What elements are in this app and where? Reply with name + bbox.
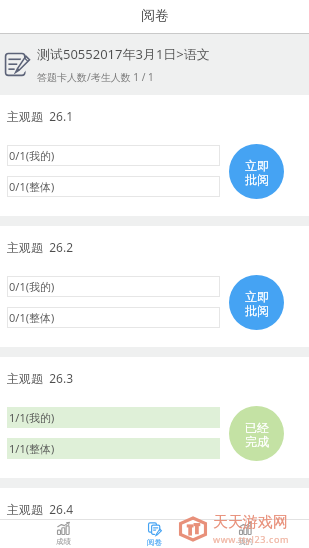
staticText: 已经 完成 — [245, 420, 269, 450]
button[interactable]: 立即 批阅 — [229, 144, 284, 199]
staticText: 我的 — [238, 537, 253, 546]
button[interactable]: 立即 批阅 — [229, 537, 284, 548]
staticText: www.ttyl23.com — [213, 533, 289, 545]
staticText: 1/1(我的) — [9, 410, 55, 425]
staticText: 0/1(整体) — [9, 179, 55, 194]
staticText: 测试50552017年3月1日>语文 — [37, 45, 210, 63]
button[interactable]: 已经 完成 — [229, 406, 284, 461]
staticText: 阅卷 — [141, 7, 169, 25]
staticText: 成绩 — [56, 537, 71, 546]
button[interactable]: 测试50552017年3月1日>语文 — [0, 34, 309, 95]
button[interactable]: 立即 批阅 — [229, 275, 284, 330]
staticText: 立即 批阅 — [245, 158, 269, 188]
staticText: 答题卡人数/考生人数 1 / 1 — [37, 70, 154, 84]
staticText: 1/1(整体) — [9, 441, 55, 456]
staticText: 主观题 26.1 — [7, 108, 74, 124]
button[interactable]: 阅卷 — [109, 520, 200, 547]
staticText: 天天游戏网 — [213, 513, 288, 532]
staticText: 主观题 26.2 — [7, 239, 74, 255]
staticText: 立即 批阅 — [245, 538, 269, 548]
staticText: 0/1(整体) — [9, 310, 55, 325]
button[interactable]: 我的 — [200, 520, 291, 546]
staticText: 主观题 26.3 — [7, 370, 74, 386]
staticText: 阅卷 — [147, 538, 162, 547]
staticText: 立即 批阅 — [245, 289, 269, 319]
staticText: 主观题 26.4 — [7, 501, 74, 517]
button[interactable]: 成绩 — [18, 520, 109, 546]
staticText: 0/1(我的) — [9, 279, 55, 294]
staticText: 0/1(我的) — [9, 148, 55, 163]
